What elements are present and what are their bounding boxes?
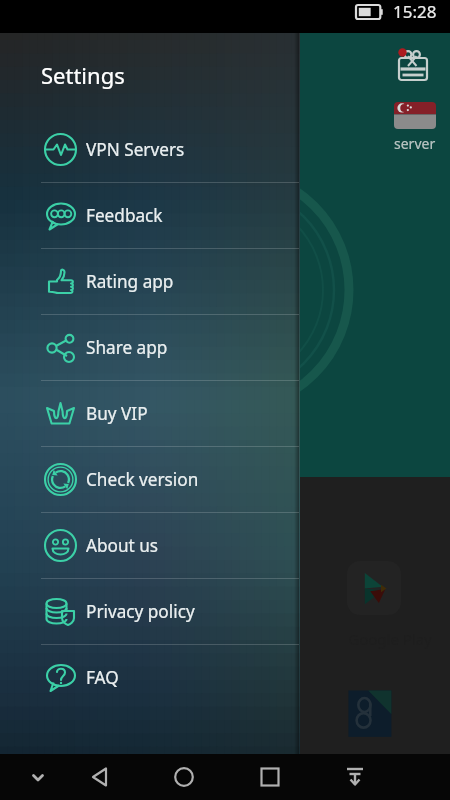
button[interactable]: Check version [0,446,299,512]
button[interactable]: Buy VIP [0,380,299,446]
staticText: Share app [86,336,168,359]
button[interactable]: About us [0,512,299,578]
button[interactable]: Recents [247,754,293,800]
staticText: Buy VIP [86,402,148,425]
staticText: Check version [86,468,199,491]
button[interactable]: Privacy policy [0,578,299,644]
button[interactable]: FAQ [0,644,299,710]
button[interactable]: Home [161,754,207,800]
button[interactable]: Download [332,754,378,800]
button[interactable]: Google Play [347,561,401,615]
staticText: FAQ [86,666,119,689]
button[interactable]: server [390,102,440,153]
staticText: VPN Servers [86,138,185,161]
staticText: Rating app [86,270,174,293]
staticText: Feedback [86,204,163,227]
button[interactable]: Feedback [0,182,299,248]
staticText: server [394,134,436,153]
button[interactable]: Share app [0,314,299,380]
staticText: About us [86,534,159,557]
staticText: 15:28 [393,0,437,23]
button[interactable]: VPN Servers [0,117,299,182]
button[interactable]: Gift [394,48,432,86]
staticText: Settings [41,60,125,90]
staticText: Privacy policy [86,600,195,623]
button[interactable]: Rating app [0,248,299,314]
button[interactable]: Collapse keyboard [15,754,61,800]
button[interactable]: Google app [345,687,403,745]
button[interactable]: Back [77,754,123,800]
